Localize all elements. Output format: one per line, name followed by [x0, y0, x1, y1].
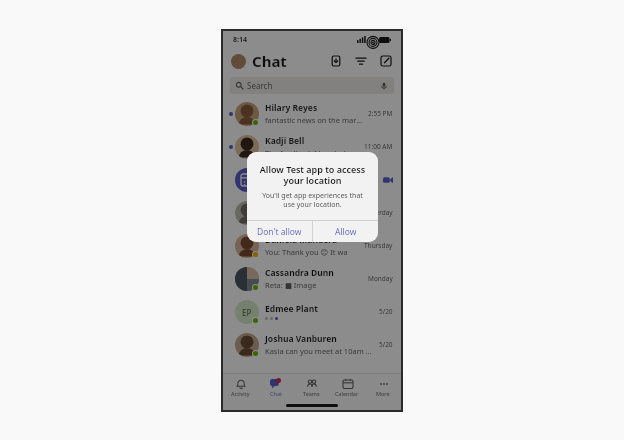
- staticText: Joshua Vanburen: [265, 333, 337, 345]
- button[interactable]: Filter: [354, 54, 368, 68]
- button[interactable]: More: [365, 374, 401, 400]
- staticText: Allow Test app to access your location: [257, 163, 368, 186]
- button[interactable]: Cassandra Dunn: [223, 262, 401, 295]
- staticText: Sure, let's sync tomorrow: [265, 214, 354, 224]
- staticText: Activity: [231, 390, 250, 397]
- staticText: Chat: [270, 390, 282, 397]
- button[interactable]: Daniela Mandera: [223, 229, 401, 262]
- staticText: Don't allow: [257, 226, 302, 238]
- staticText: Yesterday: [363, 208, 393, 217]
- staticText: Hilary Reyes: [265, 102, 318, 114]
- button[interactable]: Calendar: [329, 374, 365, 400]
- staticText: Teams: [303, 390, 320, 397]
- staticText: fantastic news on the marketing pr...: [265, 115, 364, 125]
- staticText: 2:55 PM: [368, 109, 393, 118]
- button[interactable]: Monthly Design Review: [223, 163, 401, 196]
- staticText: Kasia can you meet at 10am on Monda...: [265, 346, 375, 356]
- staticText: Thursday: [364, 241, 393, 250]
- button[interactable]: [231, 54, 246, 69]
- staticText: Daniela Mandera: [265, 234, 338, 246]
- button[interactable]: Activity: [223, 374, 258, 400]
- button[interactable]: EP: [223, 295, 401, 328]
- button[interactable]: Joshua Vanburen: [223, 328, 401, 361]
- staticText: Marco Oliveira: [265, 201, 327, 213]
- staticText: Monthly Design Review: [265, 168, 364, 180]
- button[interactable]: Save messages: [329, 54, 343, 68]
- staticText: 8:14: [233, 35, 247, 45]
- staticText: Edmee Plant: [265, 303, 318, 315]
- staticText: Cassandra Dunn: [265, 267, 334, 279]
- staticText: You: Thank you 😊 It wa: [265, 247, 348, 257]
- staticText: 5/20: [379, 307, 393, 316]
- staticText: Monday: [368, 274, 393, 283]
- staticText: EP: [242, 307, 252, 318]
- button[interactable]: Don't allow: [247, 221, 312, 242]
- button[interactable]: New chat: [379, 54, 393, 68]
- staticText: More: [376, 390, 390, 397]
- button[interactable]: Teams: [293, 374, 329, 400]
- button[interactable]: Allow: [313, 221, 378, 242]
- staticText: Chat: [252, 51, 287, 71]
- button[interactable]: Chat: [258, 374, 293, 400]
- staticText: Search: [247, 80, 273, 91]
- staticText: 11:00 AM: [364, 142, 393, 151]
- button[interactable]: Search: [230, 77, 394, 94]
- button[interactable]: Join video meeting: [382, 174, 393, 185]
- staticText: Calendar: [335, 390, 359, 397]
- staticText: The feedback I handed over was fi...: [265, 148, 360, 158]
- staticText: Reta: ■ Image: [265, 280, 317, 290]
- staticText: You'll get app experiences that use your…: [257, 191, 368, 209]
- button[interactable]: Kadji Bell: [223, 130, 401, 163]
- staticText: 5/20: [379, 340, 393, 349]
- other: Voice search: [380, 82, 388, 90]
- staticText: Kadji Bell: [265, 135, 305, 147]
- staticText: Allow: [335, 226, 357, 238]
- button[interactable]: Marco Oliveira: [223, 196, 401, 229]
- button[interactable]: Hilary Reyes: [223, 97, 401, 130]
